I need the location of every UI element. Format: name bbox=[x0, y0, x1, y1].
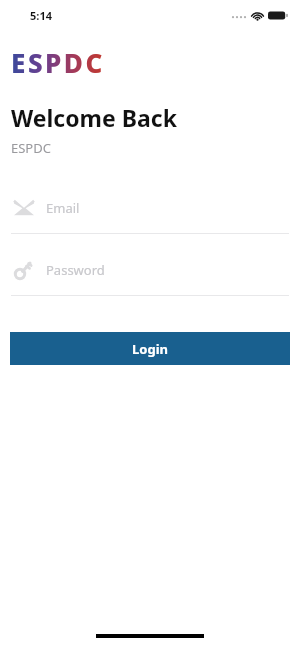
button[interactable]: Password field bbox=[0, 257, 300, 296]
staticText: 5:14 bbox=[30, 8, 52, 23]
staticText: Password bbox=[46, 261, 105, 279]
staticText: ESPDC bbox=[11, 139, 51, 157]
button[interactable]: Login bbox=[10, 332, 290, 365]
staticText: Email bbox=[46, 199, 80, 217]
staticText: ESPDC bbox=[11, 45, 105, 80]
button[interactable]: Email field bbox=[0, 195, 300, 234]
staticText: Login bbox=[132, 340, 168, 358]
staticText: Welcome Back bbox=[11, 102, 177, 133]
